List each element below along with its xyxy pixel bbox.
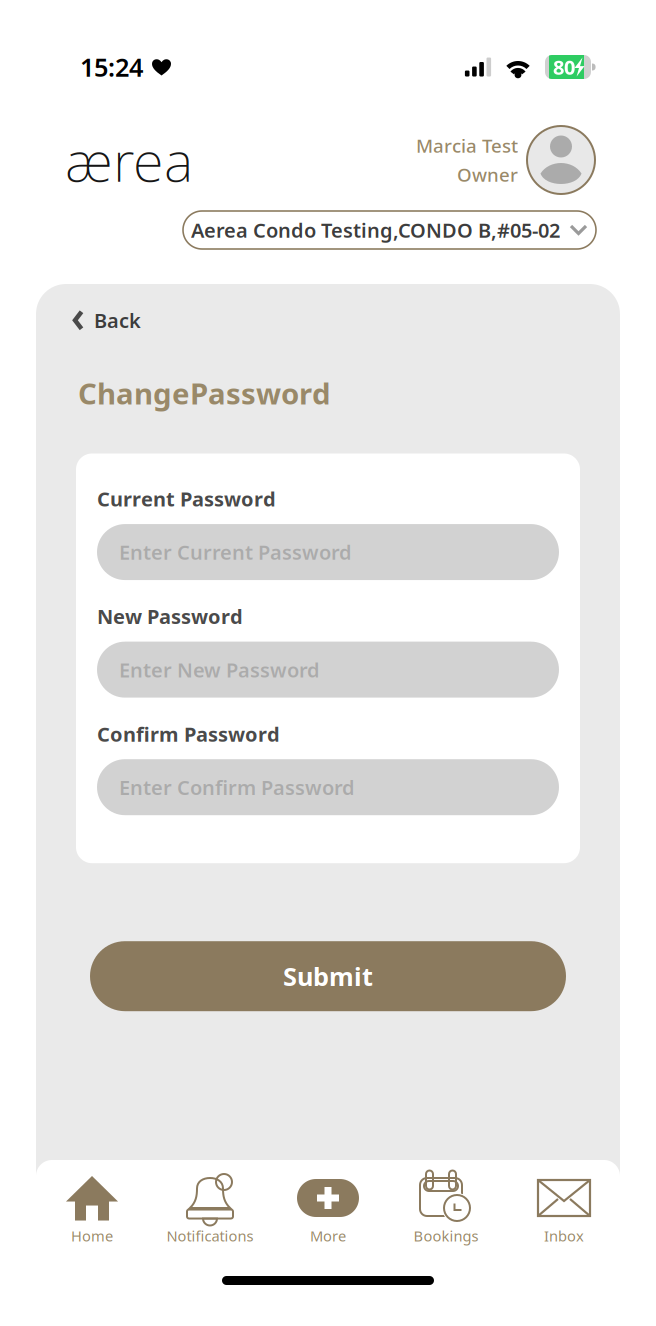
- button[interactable]: Enter New Password: [97, 642, 559, 698]
- staticText: Aerea Condo Testing,CONDO B,#05-02: [191, 217, 560, 243]
- staticText: More: [310, 1226, 346, 1245]
- staticText: Current Password: [97, 485, 276, 512]
- staticText: New Password: [97, 603, 243, 630]
- button[interactable]: Submit: [90, 941, 566, 1011]
- button[interactable]: Back: [72, 307, 141, 334]
- button[interactable]: Notifications: [151, 1174, 269, 1245]
- staticText: Back: [94, 307, 141, 334]
- staticText: Enter Confirm Password: [119, 774, 355, 800]
- button[interactable]: Enter Current Password: [97, 524, 559, 580]
- staticText: Inbox: [544, 1226, 584, 1245]
- staticText: Notifications: [166, 1226, 253, 1245]
- staticText: 15:24: [80, 50, 143, 84]
- staticText: ærea: [65, 123, 193, 197]
- staticText: Enter New Password: [119, 656, 320, 683]
- button[interactable]: Inbox: [505, 1174, 623, 1245]
- staticText: Enter Current Password: [119, 539, 352, 565]
- staticText: Owner: [457, 162, 518, 187]
- button[interactable]: Bookings: [387, 1174, 505, 1245]
- button[interactable]: Marcia Test: [416, 126, 595, 194]
- staticText: Confirm Password: [97, 721, 280, 747]
- button[interactable]: More: [269, 1174, 387, 1245]
- staticText: Marcia Test: [416, 133, 518, 158]
- button[interactable]: Enter Confirm Password: [97, 759, 559, 815]
- staticText: Bookings: [413, 1226, 478, 1245]
- staticText: Home: [71, 1226, 113, 1245]
- button[interactable]: Aerea Condo Testing,CONDO B,#05-02: [183, 211, 596, 249]
- staticText: 80: [553, 54, 575, 80]
- staticText: Submit: [283, 959, 373, 993]
- staticText: ChangePassword: [78, 374, 331, 413]
- button[interactable]: Home: [33, 1174, 151, 1245]
